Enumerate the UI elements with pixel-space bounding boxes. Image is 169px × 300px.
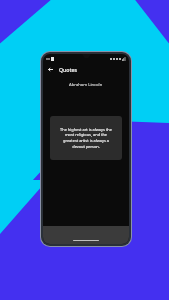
button[interactable]: The highest art is always the most relig… [50,116,122,160]
staticText: The highest art is always the most relig… [58,127,114,150]
button[interactable]: Back [46,65,55,74]
staticText: Quotes [59,66,77,73]
staticText: Abraham Lincoln [69,82,103,88]
